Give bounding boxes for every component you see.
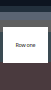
staticText: Row one xyxy=(15,41,35,49)
